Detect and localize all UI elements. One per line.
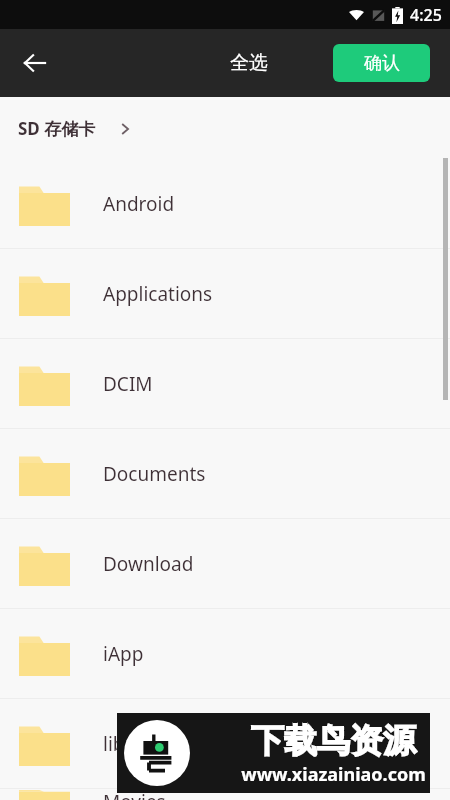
- button[interactable]: Download: [0, 519, 450, 608]
- button[interactable]: 全选: [220, 45, 278, 81]
- button[interactable]: 确认: [333, 44, 430, 82]
- button[interactable]: Back: [10, 38, 60, 88]
- staticText: Android: [103, 191, 175, 217]
- staticText: DCIM: [103, 371, 153, 397]
- button[interactable]: Movies: [0, 789, 450, 800]
- staticText: Applications: [103, 281, 213, 307]
- staticText: iApp: [103, 641, 144, 667]
- button[interactable]: DCIM: [0, 339, 450, 428]
- staticText: libs: [103, 731, 134, 757]
- button[interactable]: Android: [0, 159, 450, 248]
- staticText: Documents: [103, 461, 206, 487]
- button[interactable]: iApp: [0, 609, 450, 698]
- staticText: Download: [103, 551, 194, 577]
- staticText: 确认: [364, 52, 400, 75]
- staticText: 下载鸟资源: [251, 720, 416, 762]
- button[interactable]: Applications: [0, 249, 450, 338]
- staticText: SD 存储卡: [18, 117, 96, 140]
- staticText: www.xiazainiao.com: [241, 762, 426, 787]
- button[interactable]: libs: [0, 699, 450, 788]
- staticText: 4:25: [410, 4, 442, 26]
- staticText: Movies: [103, 789, 166, 800]
- button[interactable]: SD 存储卡: [14, 113, 136, 144]
- button[interactable]: Documents: [0, 429, 450, 518]
- staticText: 全选: [230, 51, 268, 75]
